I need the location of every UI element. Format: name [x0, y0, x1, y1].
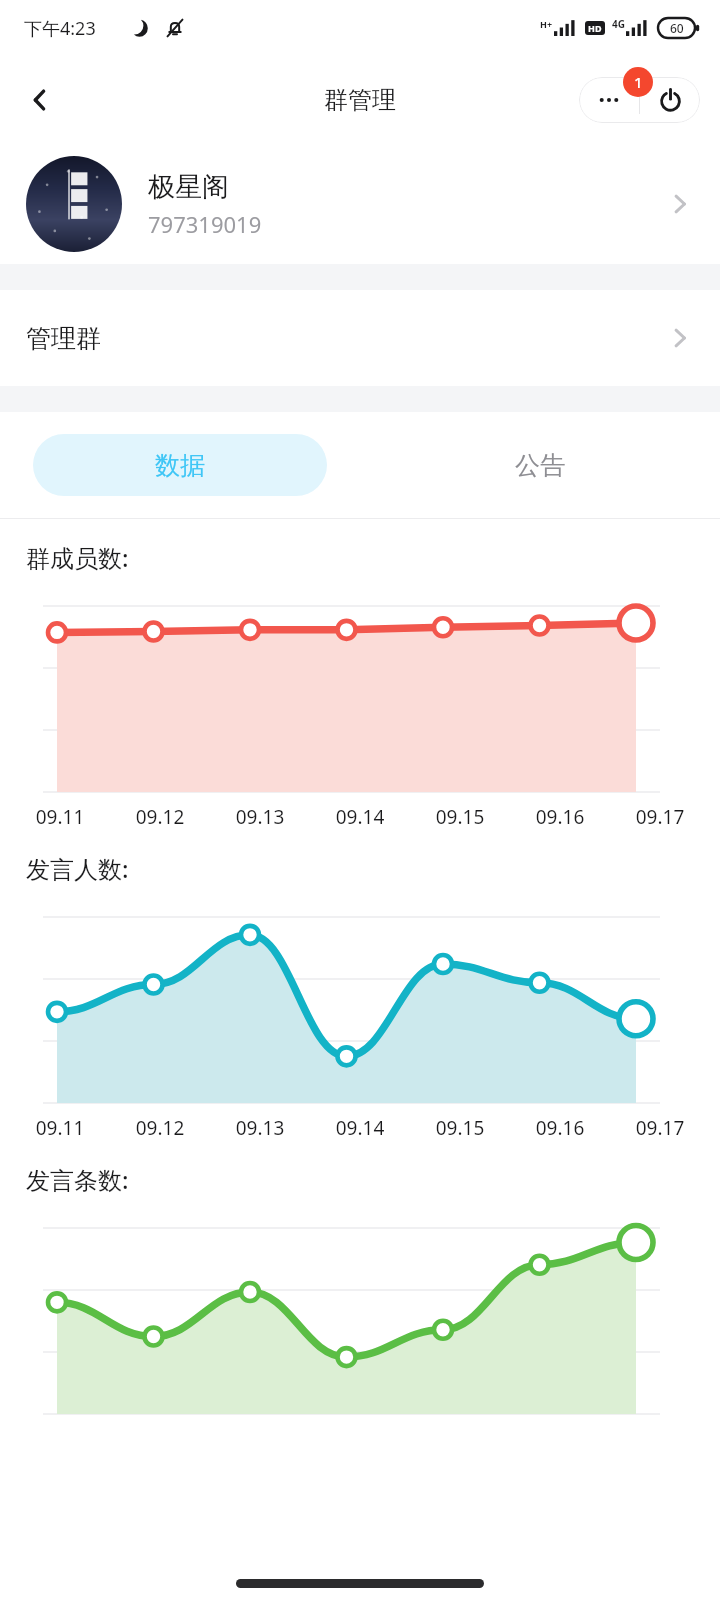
staticText: 09.14 [310, 804, 410, 830]
staticText: 4G [612, 17, 625, 31]
staticText: 下午4:23 [24, 16, 96, 41]
staticText: 09.14 [310, 1115, 410, 1141]
button[interactable]: Back [12, 72, 68, 128]
button[interactable]: More options [579, 77, 639, 123]
staticText: 09.12 [110, 1115, 210, 1141]
staticText: 公告 [515, 450, 565, 481]
staticText: 发言条数: [26, 1163, 129, 1196]
staticText: 60 [670, 20, 684, 36]
staticText: 09.15 [410, 804, 510, 830]
staticText: 09.15 [410, 1115, 510, 1141]
staticText: 发言人数: [26, 852, 129, 885]
staticText: 09.13 [210, 1115, 310, 1141]
staticText: 数据 [155, 450, 205, 481]
staticText: 09.13 [210, 804, 310, 830]
staticText: 群管理 [324, 85, 396, 115]
staticText: 09.11 [10, 1115, 110, 1141]
button[interactable]: 管理群 [0, 290, 720, 386]
staticText: HD [588, 22, 602, 34]
staticText: 群成员数: [26, 541, 129, 574]
staticText: H+ [540, 18, 553, 30]
staticText: 09.16 [510, 1115, 610, 1141]
staticText: 09.16 [510, 804, 610, 830]
button[interactable]: Power [640, 77, 700, 123]
button[interactable]: 极星阁 [0, 144, 720, 264]
staticText: 09.17 [610, 1115, 710, 1141]
staticText: 09.12 [110, 804, 210, 830]
staticText: 797319019 [148, 209, 262, 239]
staticText: 1 [634, 72, 643, 92]
staticText: 管理群 [26, 323, 666, 354]
staticText: 09.11 [10, 804, 110, 830]
staticText: 极星阁 [148, 170, 229, 204]
staticText: 09.17 [610, 804, 710, 830]
button[interactable]: 公告 [393, 434, 687, 496]
button[interactable]: 数据 [33, 434, 327, 496]
